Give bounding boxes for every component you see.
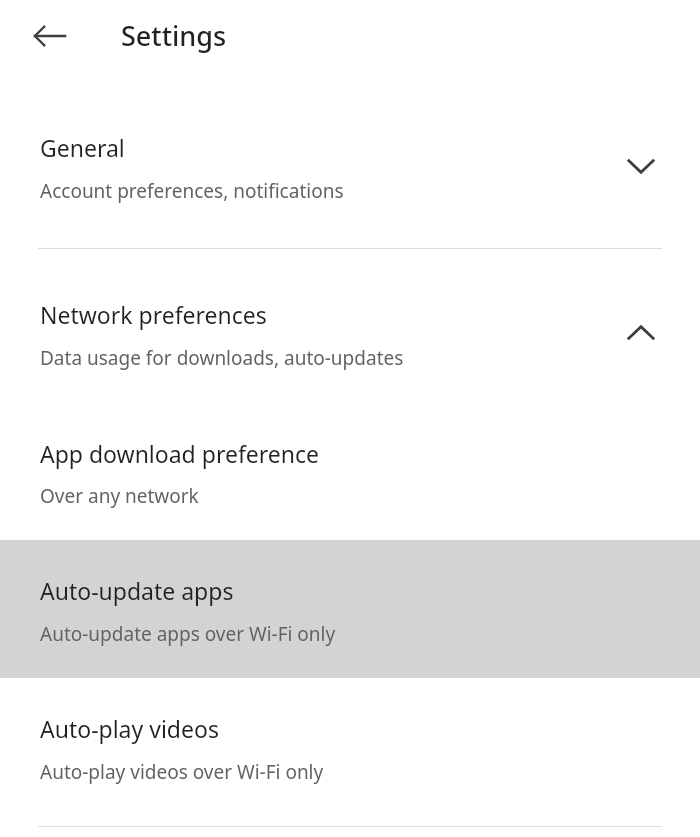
staticText: App download preference [40, 438, 320, 469]
staticText: Data usage for downloads, auto-updates [40, 345, 404, 371]
staticText: General [40, 132, 125, 163]
button[interactable]: Settings [121, 17, 227, 54]
button[interactable] [0, 698, 700, 816]
staticText: Auto-update apps [40, 575, 234, 606]
staticText: Settings [121, 17, 227, 54]
staticText: Account preferences, notifications [40, 178, 344, 204]
button[interactable] [0, 283, 700, 399]
button[interactable]: Collapse Network preferences [626, 318, 656, 348]
button[interactable] [0, 116, 700, 232]
button[interactable] [0, 422, 700, 540]
button[interactable]: Back [32, 18, 68, 54]
staticText: Auto-update apps over Wi-Fi only [40, 621, 336, 647]
button[interactable]: Expand General [626, 151, 656, 181]
staticText: Network preferences [40, 299, 267, 330]
staticText: Over any network [40, 483, 199, 509]
staticText: Auto-play videos [40, 713, 219, 744]
button[interactable] [0, 540, 700, 678]
staticText: Auto-play videos over Wi-Fi only [40, 759, 324, 785]
